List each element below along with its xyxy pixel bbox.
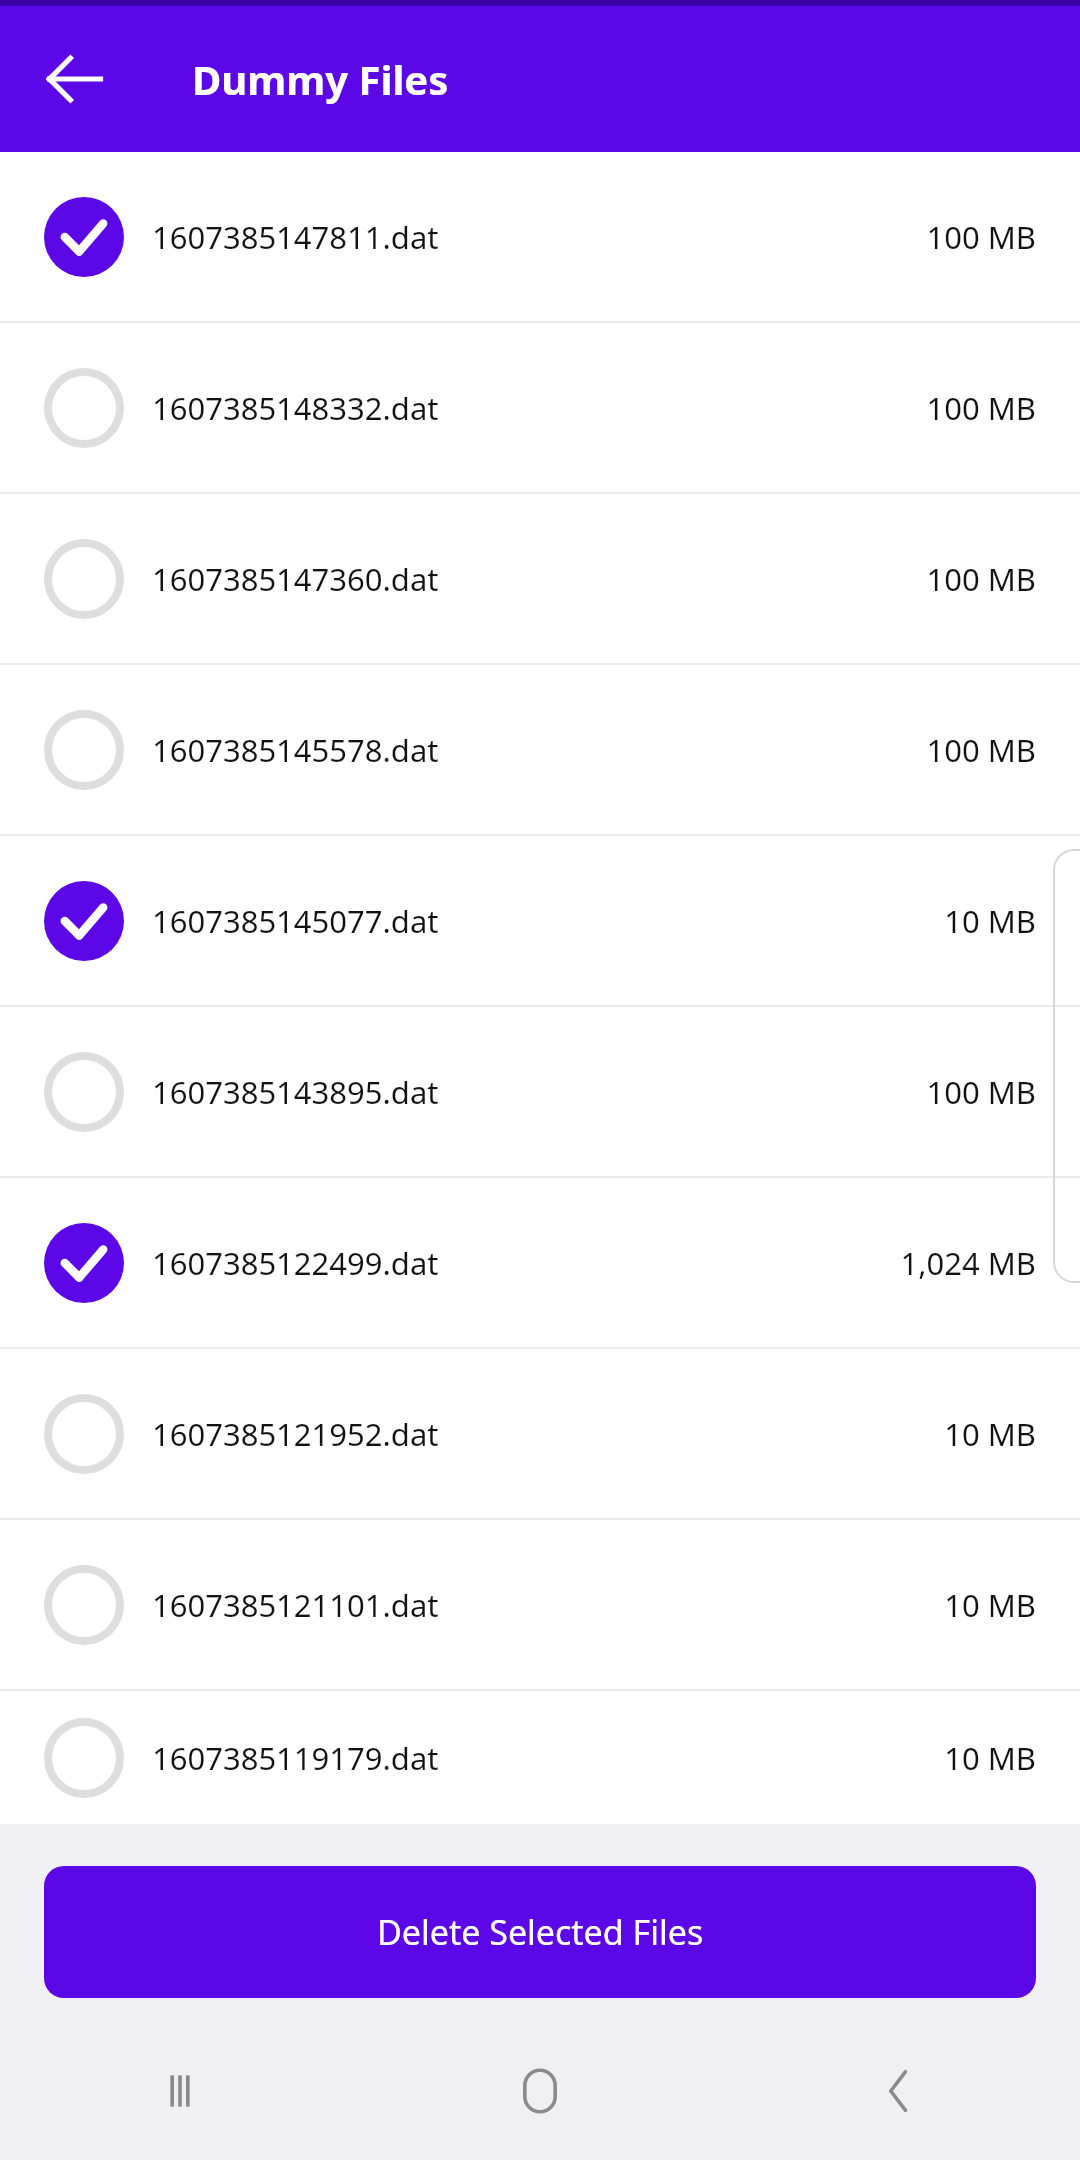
staticText: 100 MB	[926, 216, 1036, 258]
staticText: 1607385147811.dat	[152, 216, 926, 258]
button[interactable]: Home	[485, 2036, 595, 2146]
button[interactable]: 1607385145077.dat	[0, 836, 1080, 1005]
staticText: 1607385121101.dat	[152, 1584, 944, 1626]
staticText: 1607385148332.dat	[152, 387, 926, 429]
button[interactable]: 1607385119179.dat	[0, 1691, 1080, 1824]
staticText: Delete Selected Files	[377, 1909, 704, 1955]
button[interactable]: Delete Selected Files	[44, 1866, 1036, 1998]
button[interactable]: 1607385122499.dat	[0, 1178, 1080, 1347]
staticText: 1607385119179.dat	[152, 1737, 944, 1779]
staticText: 1607385147360.dat	[152, 558, 926, 600]
button[interactable]: 1607385148332.dat	[0, 323, 1080, 492]
button[interactable]: 1607385145578.dat	[0, 665, 1080, 834]
staticText: 1607385121952.dat	[152, 1413, 944, 1455]
staticText: 1607385145077.dat	[152, 900, 944, 942]
staticText: 10 MB	[944, 1737, 1036, 1779]
button[interactable]: 1607385147811.dat	[0, 152, 1080, 321]
button[interactable]: 1607385143895.dat	[0, 1007, 1080, 1176]
staticText: Dummy Files	[192, 52, 449, 106]
staticText: 1607385145578.dat	[152, 729, 926, 771]
button[interactable]: 1607385121952.dat	[0, 1349, 1080, 1518]
staticText: 100 MB	[926, 558, 1036, 600]
button[interactable]: 1607385147360.dat	[0, 494, 1080, 663]
staticText: 1,024 MB	[900, 1242, 1036, 1284]
staticText: 1607385143895.dat	[152, 1071, 926, 1113]
button[interactable]: Back	[845, 2036, 955, 2146]
staticText: 1607385122499.dat	[152, 1242, 900, 1284]
staticText: 10 MB	[944, 900, 1036, 942]
button[interactable]: Recent apps	[125, 2036, 235, 2146]
staticText: 100 MB	[926, 387, 1036, 429]
staticText: 10 MB	[944, 1413, 1036, 1455]
staticText: 100 MB	[926, 1071, 1036, 1113]
staticText: 100 MB	[926, 729, 1036, 771]
button[interactable]: 1607385121101.dat	[0, 1520, 1080, 1689]
staticText: 10 MB	[944, 1584, 1036, 1626]
button[interactable]: Back	[27, 31, 123, 127]
